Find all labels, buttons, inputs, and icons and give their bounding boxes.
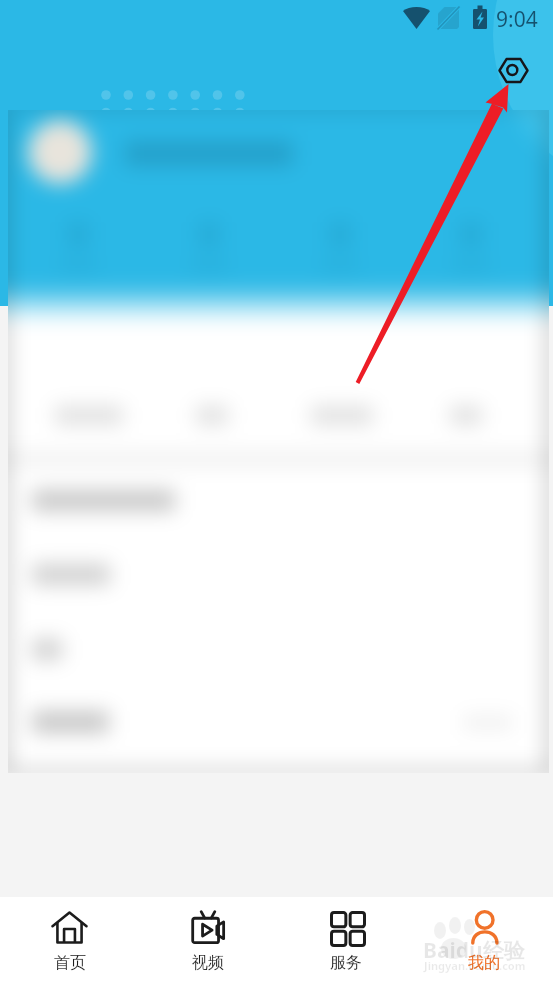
staticText: Jingyan.baidu.com bbox=[424, 958, 526, 973]
staticText: Baidu经验 bbox=[423, 936, 525, 965]
button[interactable]: 我的 bbox=[415, 897, 553, 983]
button[interactable]: 视频 bbox=[139, 897, 277, 983]
staticText: 我的 bbox=[468, 953, 500, 973]
button[interactable]: 首页 bbox=[0, 897, 139, 983]
staticText: 首页 bbox=[54, 953, 86, 973]
button[interactable]: 服务 bbox=[277, 897, 415, 983]
staticText: 9:04 bbox=[496, 5, 538, 34]
staticText: 服务 bbox=[330, 953, 362, 973]
button[interactable]: Settings bbox=[494, 51, 533, 90]
staticText: 视频 bbox=[192, 953, 224, 973]
